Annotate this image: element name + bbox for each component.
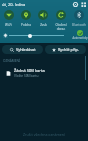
- button[interactable]: Žádná SIM karta: [0, 64, 88, 80]
- button[interactable]: Edit quick settings: [79, 0, 87, 8]
- staticText: Rychlé přip.: [58, 47, 79, 52]
- staticText: Vyhledávat: [16, 47, 36, 52]
- staticText: Žádná SIM karta: [14, 68, 45, 73]
- button[interactable]: Otočení obraz.: [52, 7, 70, 36]
- button[interactable]: Auto brightness: [72, 30, 88, 40]
- staticText: Zrušit všechna oznámení: [23, 132, 65, 137]
- button[interactable]: Poloha: [17, 7, 34, 36]
- button[interactable]: Vyhledávat: [2, 45, 43, 54]
- button[interactable]: Zrušit všechna oznámení: [0, 128, 88, 141]
- button[interactable]: Bluetooth: [70, 7, 88, 36]
- staticText: OZNÁMENÍ: [3, 59, 21, 63]
- button[interactable]: Zvuk: [34, 7, 52, 36]
- staticText: Bluetooth: [72, 23, 86, 27]
- button[interactable]: Rychlé přip.: [45, 45, 86, 54]
- staticText: Otočení obraz.: [55, 23, 67, 31]
- staticText: Automaticky: [72, 36, 88, 40]
- staticText: Poloha: [21, 23, 31, 27]
- button[interactable]: Settings: [71, 0, 79, 8]
- staticText: út, 20. ledna: [2, 2, 26, 7]
- button[interactable]: Wi-Fi: [0, 7, 17, 36]
- staticText: Wi-Fi: [5, 23, 12, 27]
- staticText: Zvuk: [40, 23, 47, 27]
- staticText: Vložte SIM kartu: [14, 74, 39, 78]
